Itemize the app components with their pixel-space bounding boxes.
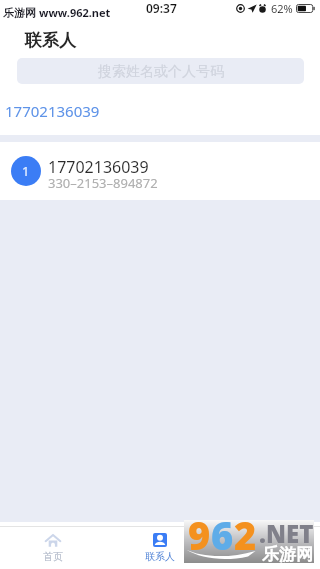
- staticText: 1: [22, 162, 30, 180]
- staticText: 62%: [271, 1, 293, 16]
- staticText: 乐游网: [262, 544, 313, 565]
- button[interactable]: Contacts: [106, 527, 213, 569]
- staticText: 9: [188, 509, 211, 552]
- staticText: 330–2153–894872: [48, 174, 158, 192]
- staticText: 联系人: [145, 550, 175, 563]
- staticText: 09:37: [146, 0, 177, 16]
- other: Contacts: [153, 533, 167, 547]
- staticText: 联系人: [25, 30, 76, 51]
- button[interactable]: Home: [0, 527, 106, 569]
- staticText: 6: [211, 509, 234, 552]
- button[interactable]: 搜索姓名或个人号码: [17, 58, 304, 84]
- staticText: 首页: [43, 550, 63, 563]
- other: Home: [45, 534, 61, 547]
- staticText: 17702136039: [5, 101, 100, 121]
- staticText: .NET: [259, 517, 314, 550]
- staticText: www.962.net: [39, 5, 111, 20]
- staticText: 乐游网: [3, 6, 36, 20]
- staticText: 2: [234, 509, 257, 552]
- staticText: 搜索姓名或个人号码: [98, 63, 224, 81]
- staticText: 17702136039: [48, 156, 149, 178]
- button[interactable]: 1: [0, 142, 320, 200]
